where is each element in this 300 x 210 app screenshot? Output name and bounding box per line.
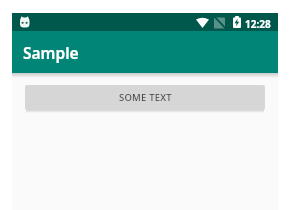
button[interactable]: SOME TEXT xyxy=(25,85,265,110)
staticText: Sample xyxy=(23,42,79,63)
staticText: 12:28 xyxy=(245,17,271,31)
staticText: SOME TEXT xyxy=(119,91,172,104)
